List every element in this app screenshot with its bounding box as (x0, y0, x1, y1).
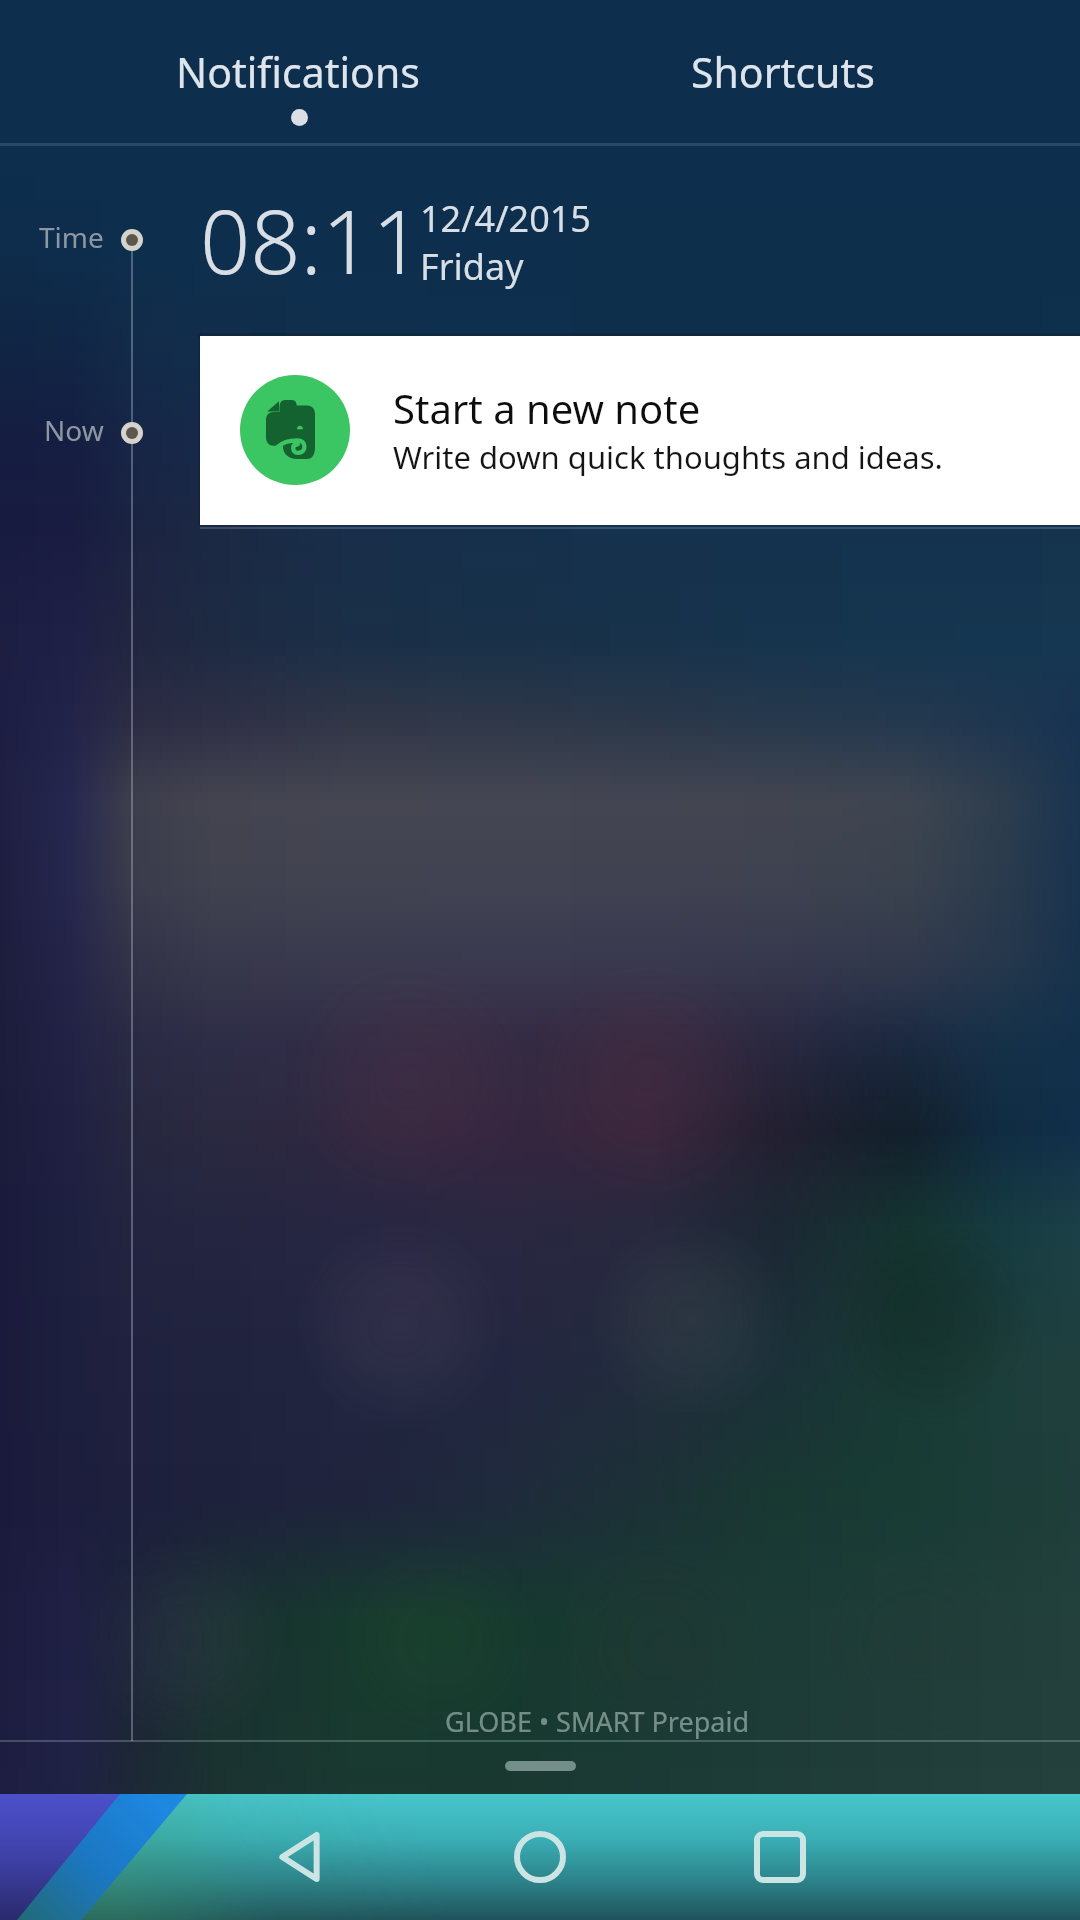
button[interactable]: Start a new note (200, 336, 1080, 525)
staticText: Time (39, 218, 104, 256)
staticText: Start a new note (393, 381, 701, 435)
staticText: Notifications (176, 44, 420, 100)
button[interactable]: Notifications (28, 0, 568, 145)
staticText: 08:11 (200, 180, 423, 300)
button[interactable]: Home (480, 1794, 600, 1920)
button[interactable]: Back (240, 1794, 360, 1920)
staticText: Shortcuts (691, 44, 875, 100)
staticText: Friday (420, 242, 524, 291)
staticText: GLOBE • SMART Prepaid (445, 1703, 749, 1740)
button[interactable]: Recent apps (720, 1794, 840, 1920)
staticText: Write down quick thoughts and ideas. (393, 436, 943, 478)
button[interactable]: Shortcuts (513, 0, 1053, 145)
staticText: Now (44, 411, 104, 449)
staticText: 12/4/2015 (420, 194, 591, 243)
